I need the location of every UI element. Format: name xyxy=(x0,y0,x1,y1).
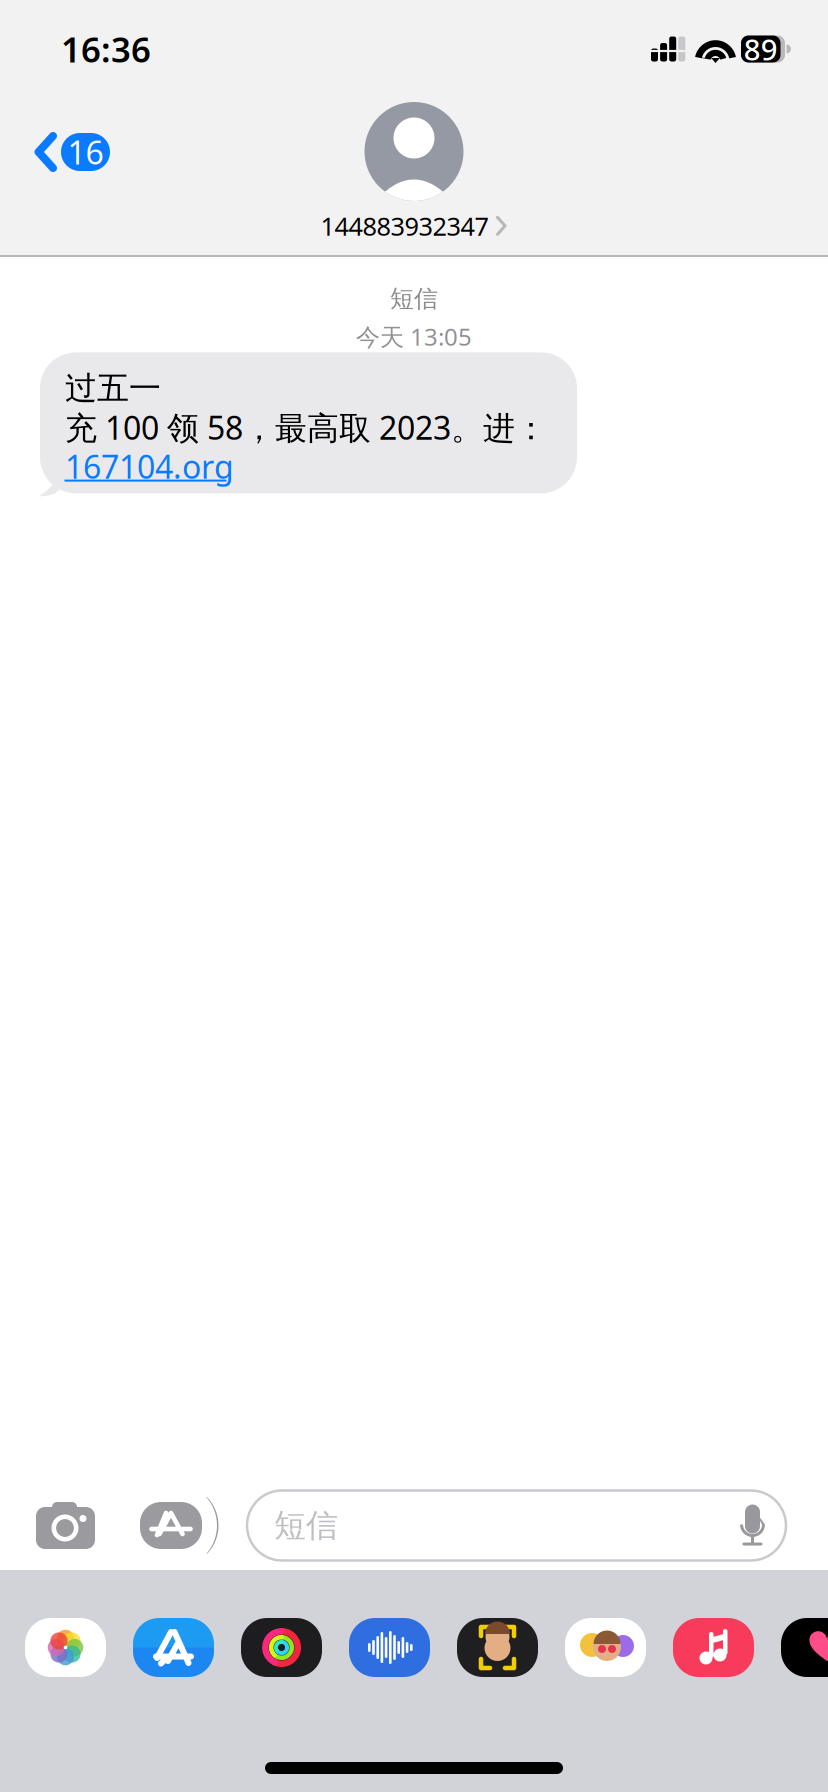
button[interactable]: Fitness xyxy=(241,1618,322,1677)
staticText: 89 xyxy=(744,29,778,68)
staticText: 充 100 领 58，最高取 2023。进： xyxy=(65,406,547,449)
button[interactable]: Camera xyxy=(25,1490,128,1560)
button[interactable]: Music xyxy=(673,1618,754,1677)
button[interactable]: Stickers xyxy=(565,1618,646,1677)
button[interactable]: Audio Message xyxy=(349,1618,430,1677)
button[interactable]: 16 xyxy=(0,98,128,206)
staticText: 今天 13:05 xyxy=(356,320,472,352)
button[interactable]: Photos xyxy=(25,1618,106,1677)
staticText: 144883932347 xyxy=(320,209,488,243)
staticText: 短信 xyxy=(274,1506,338,1545)
button[interactable]: Digital Touch xyxy=(781,1618,828,1677)
staticText: 16 xyxy=(67,131,103,173)
button[interactable]: Memoji xyxy=(457,1618,538,1677)
staticText: 167104.org xyxy=(65,445,234,488)
button[interactable]: Apps xyxy=(128,1490,220,1560)
staticText: 16:36 xyxy=(61,26,151,72)
staticText: 短信 xyxy=(390,284,438,313)
staticText: 过五一 xyxy=(65,369,161,408)
button[interactable]: App Store xyxy=(133,1618,214,1677)
